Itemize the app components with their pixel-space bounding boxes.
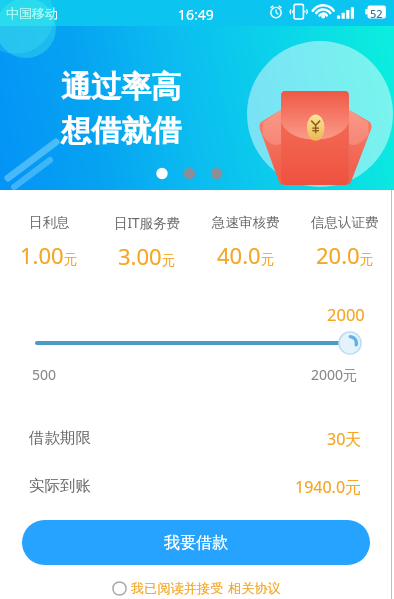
staticText: 我要借款 [164, 533, 228, 553]
button[interactable]: 我已阅读并接受 [112, 578, 224, 599]
button[interactable]: 相关协议 [228, 578, 281, 599]
staticText: 16:49 [178, 5, 214, 24]
staticText: 2000 [327, 303, 365, 325]
staticText: 1940.0元 [295, 476, 362, 498]
staticText: 我已阅读并接受 [131, 580, 224, 597]
staticText: 52 [370, 6, 383, 21]
staticText: 30天 [327, 428, 362, 450]
staticText: 实际到账 [29, 476, 91, 496]
staticText: 通过率高 [61, 68, 181, 106]
staticText: 元 [360, 251, 374, 268]
staticText: 中国移动 [6, 5, 58, 21]
staticText: 500 [32, 365, 57, 384]
staticText: 急速审核费 [212, 214, 280, 231]
staticText: 相关协议 [228, 580, 281, 597]
staticText: 40.0 [217, 240, 261, 270]
staticText: 3.00 [118, 241, 162, 271]
staticText: 日IT服务费 [114, 214, 181, 232]
staticText: 日利息 [29, 214, 70, 231]
staticText: 元 [64, 251, 78, 268]
staticText: 想借就借 [61, 112, 181, 150]
button[interactable]: 我要借款 [22, 520, 370, 565]
staticText: 信息认证费 [311, 214, 379, 231]
staticText: 元 [261, 251, 275, 268]
staticText: 借款期限 [29, 428, 91, 448]
staticText: 2000元 [311, 365, 358, 384]
staticText: 元 [162, 252, 176, 269]
staticText: 1.00 [20, 240, 64, 270]
staticText: 20.0 [316, 240, 360, 270]
